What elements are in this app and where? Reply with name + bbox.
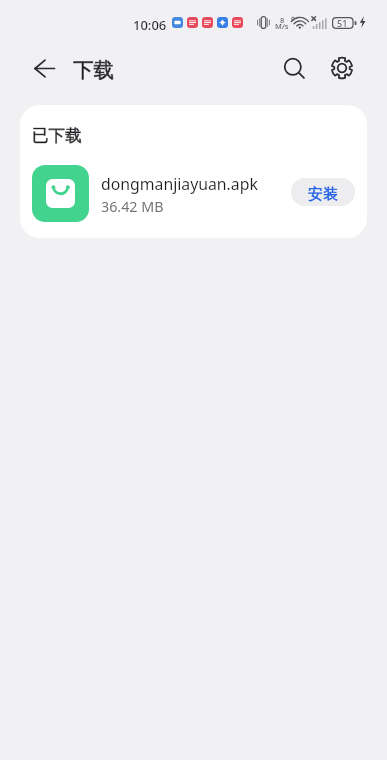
staticText: 已下载 <box>32 125 82 146</box>
button[interactable]: dongmanjiayuan.apk <box>20 153 367 238</box>
staticText: dongmanjiayuan.apk <box>101 173 258 195</box>
button[interactable]: Back <box>26 50 62 86</box>
button[interactable]: Search <box>276 50 312 86</box>
button[interactable]: Settings <box>324 50 360 86</box>
staticText: 下载 <box>73 57 114 83</box>
staticText: 10:06 <box>133 16 167 34</box>
staticText: 安装 <box>308 185 338 204</box>
staticText: 36.42 MB <box>101 197 164 216</box>
staticText: 下载 <box>73 57 114 83</box>
staticText: 已下载 <box>32 125 82 146</box>
staticText: 51 <box>337 17 348 29</box>
staticText: M/s <box>275 21 289 31</box>
staticText: 8 <box>280 15 285 25</box>
staticText: 安装 <box>308 185 338 204</box>
button[interactable]: 安装 <box>291 178 355 206</box>
